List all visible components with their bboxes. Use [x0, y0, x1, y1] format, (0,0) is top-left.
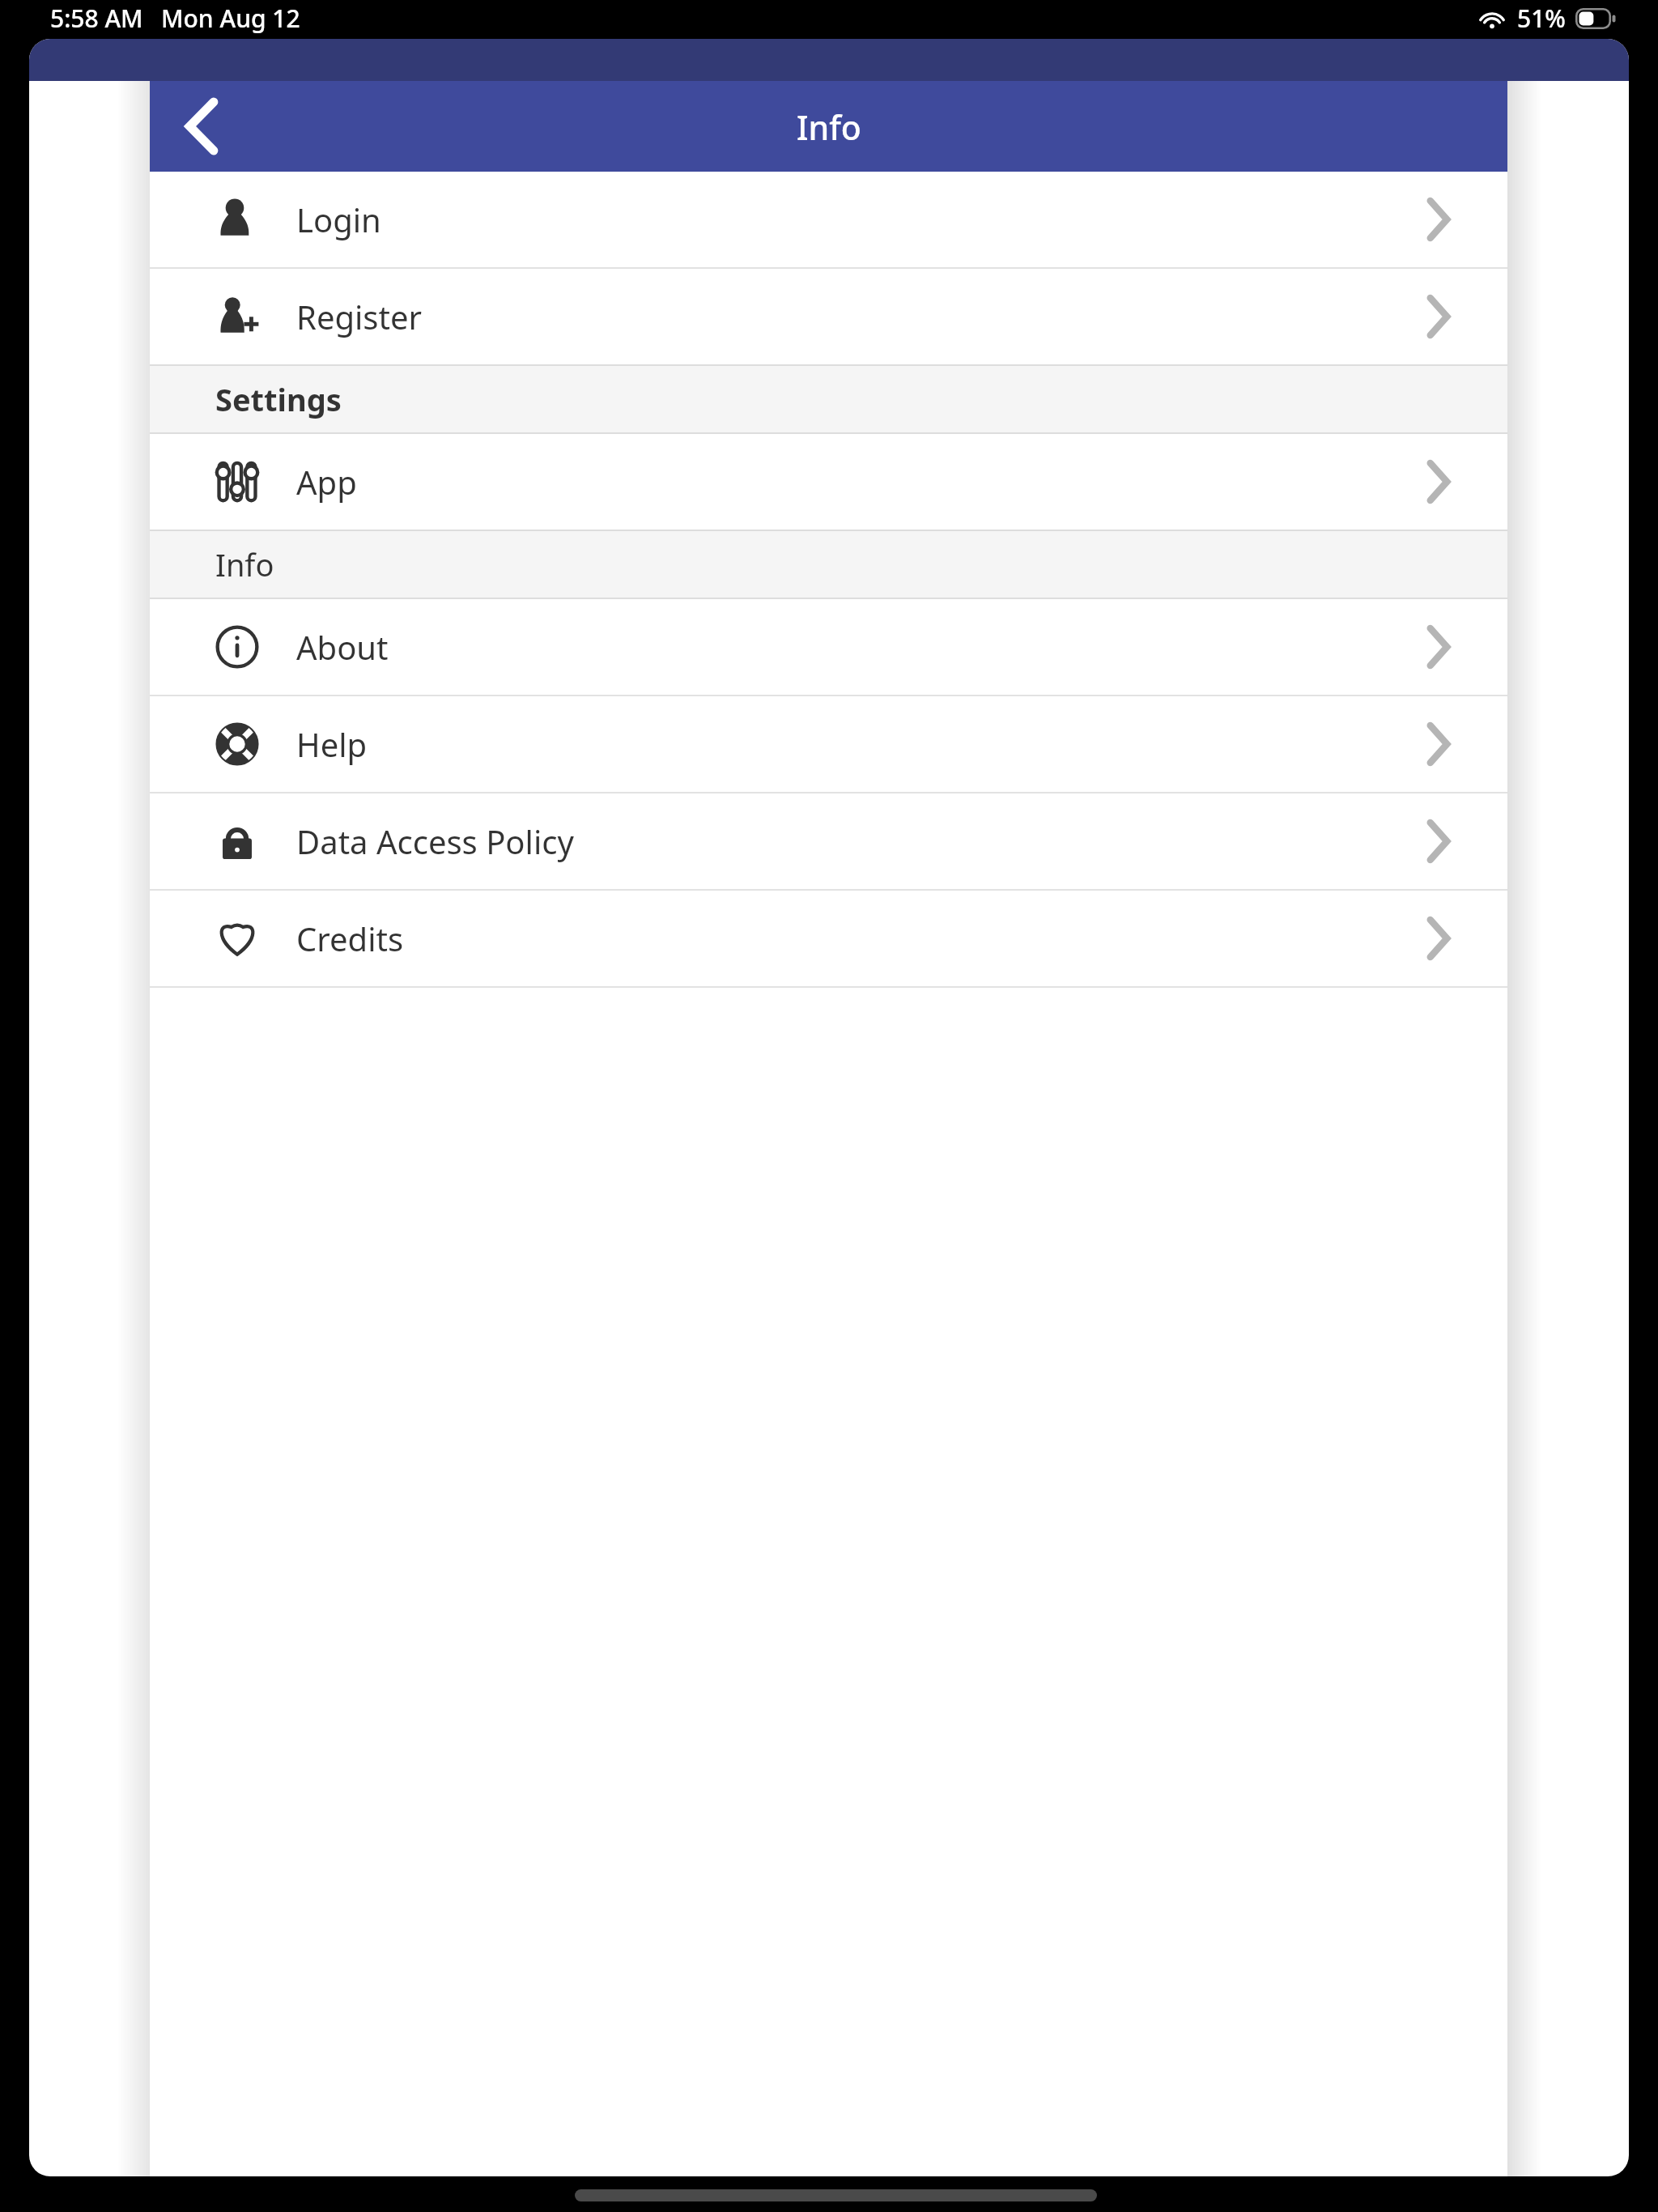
button[interactable]: Data Access Policy	[150, 793, 1507, 889]
staticText: Info	[215, 543, 274, 585]
button[interactable]: About	[150, 599, 1507, 695]
staticText: 51%	[1517, 2, 1566, 35]
staticText: App	[296, 460, 357, 504]
button[interactable]: Help	[150, 696, 1507, 792]
staticText: Info	[797, 104, 861, 150]
staticText: Data Access Policy	[296, 819, 574, 863]
staticText: 5:58 AM	[50, 2, 143, 35]
staticText: Settings	[215, 378, 342, 420]
staticText: Credits	[296, 917, 404, 960]
button[interactable]: Register	[150, 269, 1507, 364]
staticText: Register	[296, 295, 423, 338]
staticText: About	[296, 625, 389, 669]
button[interactable]: App	[150, 434, 1507, 530]
button[interactable]: Credits	[150, 891, 1507, 986]
button[interactable]: Login	[150, 172, 1507, 267]
staticText: Mon Aug 12	[161, 2, 300, 35]
button[interactable]: Back	[164, 87, 242, 165]
staticText: Help	[296, 722, 368, 766]
staticText: Login	[296, 198, 381, 241]
